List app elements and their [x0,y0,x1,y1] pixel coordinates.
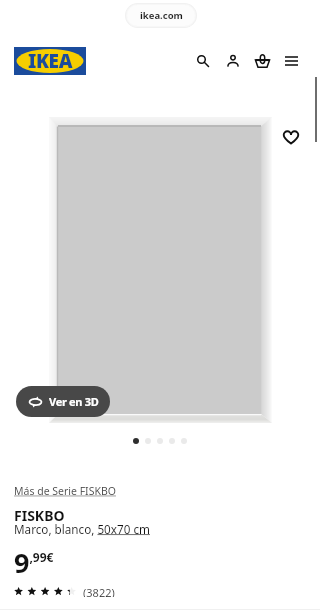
staticText: Marco, blanco, 50x70 cm [14,521,150,537]
staticText: IKEA [28,48,73,74]
button[interactable] [181,438,187,444]
button[interactable] [145,438,151,444]
button[interactable]: Account [222,50,244,72]
button[interactable]: Shopping bag [251,50,273,72]
staticText: ikea.com [140,9,183,22]
button[interactable]: Menu [280,50,302,72]
button[interactable]: Add to favourites [282,128,300,146]
button[interactable]: Ver en 3D [16,386,110,417]
button[interactable]: Más de Serie FISKBO [14,484,116,498]
staticText: Más de Serie FISKBO [14,484,116,498]
staticText: FISKBO [14,506,65,525]
button[interactable] [133,438,139,444]
button[interactable]: Search [192,50,214,72]
staticText: 9,99€ [14,544,54,581]
button[interactable] [169,438,175,444]
staticText: Ver en 3D [49,394,99,409]
button[interactable]: IKEA [14,47,86,75]
button[interactable]: ikea.com [127,5,195,26]
staticText: (3822) [83,585,115,597]
button[interactable] [157,438,163,444]
